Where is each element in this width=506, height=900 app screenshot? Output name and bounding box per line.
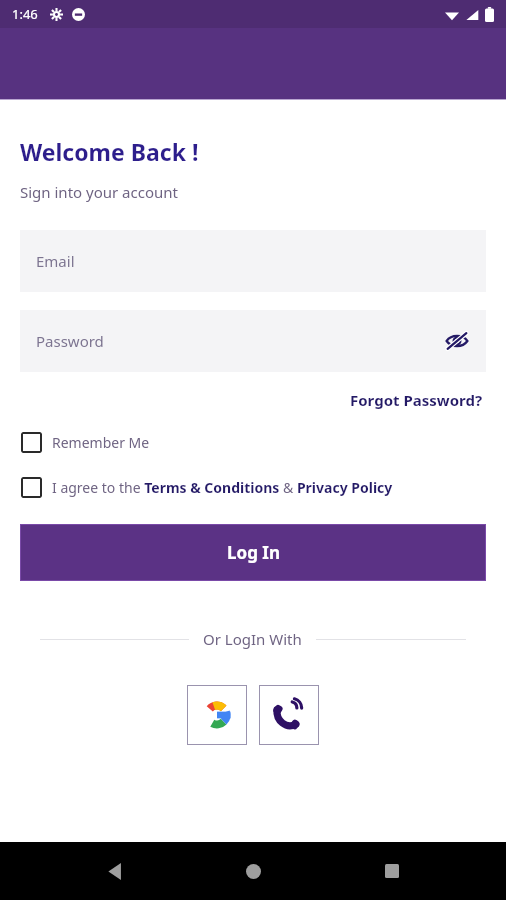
button[interactable]: Email (20, 230, 486, 292)
button[interactable]: I agree to the Terms & Conditions & Priv… (21, 473, 393, 502)
staticText: Sign into your account (20, 182, 178, 202)
button[interactable]: Log In (20, 524, 486, 581)
button[interactable]: Show password (440, 324, 474, 358)
button[interactable]: Recent apps (368, 847, 416, 895)
button[interactable]: Home (229, 847, 277, 895)
staticText: 1:46 (12, 5, 38, 23)
staticText: Remember Me (52, 433, 150, 452)
staticText: Log In (227, 541, 280, 564)
staticText: I agree to the Terms & Conditions & Priv… (52, 478, 393, 497)
button[interactable]: Password (20, 310, 486, 372)
button[interactable]: Forgot Password? (346, 386, 487, 414)
button[interactable]: Back (91, 847, 139, 895)
button[interactable]: Sign in with phone (259, 685, 319, 745)
staticText: Email (36, 251, 75, 271)
staticText: Or LogIn With (203, 629, 302, 649)
button[interactable]: Remember Me (21, 428, 150, 457)
staticText: Password (36, 331, 104, 351)
staticText: Forgot Password? (350, 390, 483, 410)
staticText: Welcome Back ! (20, 136, 199, 167)
button[interactable]: Sign in with Google (187, 685, 247, 745)
